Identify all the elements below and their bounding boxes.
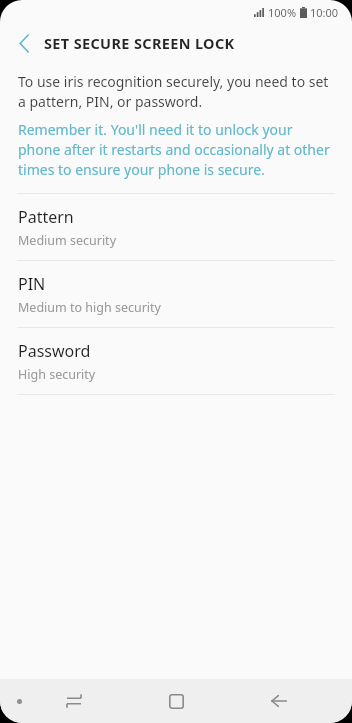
- staticText: Medium security: [18, 232, 117, 249]
- button[interactable]: Recents: [45, 679, 103, 723]
- staticText: Password: [18, 340, 91, 362]
- staticText: High security: [18, 366, 96, 383]
- button[interactable]: Password: [0, 328, 352, 394]
- staticText: Medium to high security: [18, 299, 161, 316]
- staticText: SET SECURE SCREEN LOCK: [44, 33, 235, 53]
- button[interactable]: Home: [147, 679, 205, 723]
- button[interactable]: PIN: [0, 261, 352, 327]
- staticText: 10:00: [310, 5, 339, 20]
- button[interactable]: Back: [250, 679, 308, 723]
- staticText: Remember it. You'll need it to unlock yo…: [18, 120, 332, 179]
- staticText: To use iris recognition securely, you ne…: [18, 72, 332, 111]
- staticText: 100%: [268, 5, 297, 20]
- staticText: Pattern: [18, 206, 74, 228]
- staticText: PIN: [18, 273, 46, 295]
- button[interactable]: Back: [8, 27, 40, 59]
- button[interactable]: Pattern: [0, 194, 352, 260]
